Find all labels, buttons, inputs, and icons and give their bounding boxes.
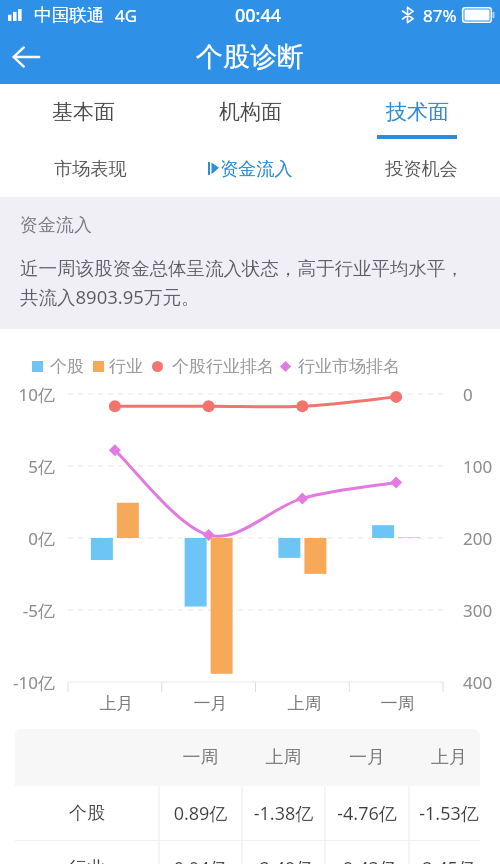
staticText: 5亿: [0, 455, 55, 478]
button[interactable]: 投资机会: [361, 145, 481, 197]
staticText: 市场表现: [54, 157, 127, 180]
button[interactable]: 机构面: [166, 84, 333, 145]
button[interactable]: Back: [0, 31, 52, 83]
staticText: 机构面: [219, 99, 282, 125]
staticText: -5亿: [0, 599, 55, 622]
staticText: 10亿: [0, 383, 55, 406]
staticText: 个股行业排名: [172, 356, 274, 377]
staticText: 一月: [164, 693, 257, 714]
staticText: 中国联通: [34, 4, 104, 26]
staticText: 00:44: [235, 3, 282, 28]
staticText: 200: [463, 527, 500, 550]
staticText: -1.53亿: [418, 801, 480, 826]
staticText: 投资机会: [385, 157, 458, 180]
staticText: 一周: [351, 693, 444, 714]
staticText: 技术面: [386, 99, 449, 125]
staticText: 行业: [15, 857, 159, 864]
button[interactable]: 技术面: [333, 84, 500, 145]
staticText: 行业市场排名: [298, 356, 400, 377]
staticText: -10亿: [0, 671, 55, 694]
staticText: 上周: [242, 746, 325, 769]
staticText: -2.49亿: [242, 856, 325, 864]
staticText: 0亿: [0, 527, 55, 550]
staticText: 行业: [109, 356, 143, 377]
staticText: 个股: [50, 356, 84, 377]
staticText: 上月: [70, 693, 163, 714]
staticText: 资金流入: [20, 214, 92, 237]
staticText: 基本面: [52, 99, 115, 125]
staticText: 上月: [418, 746, 480, 769]
staticText: 0.89亿: [159, 801, 242, 826]
button[interactable]: 市场表现: [30, 145, 150, 197]
staticText: -1.38亿: [242, 801, 325, 826]
staticText: 个股: [15, 802, 159, 825]
staticText: 资金流入: [220, 157, 293, 180]
staticText: 87%: [423, 4, 457, 27]
staticText: 2.45亿: [418, 856, 480, 864]
staticText: -4.76亿: [325, 801, 409, 826]
staticText: 100: [463, 455, 500, 478]
staticText: 一周: [159, 746, 242, 769]
staticText: 个股诊断: [196, 40, 304, 74]
staticText: 一月: [325, 746, 409, 769]
staticText: 4G: [115, 4, 138, 27]
staticText: 300: [463, 599, 500, 622]
button[interactable]: 基本面: [0, 84, 166, 145]
staticText: 0.04亿: [159, 856, 242, 864]
staticText: 上周: [258, 693, 351, 714]
staticText: 近一周该股资金总体呈流入状态，高于行业平均水平，共流入8903.95万元。: [20, 257, 482, 309]
staticText: -9.43亿: [325, 856, 409, 864]
button[interactable]: 资金流入: [190, 145, 310, 197]
staticText: 0: [463, 383, 500, 406]
staticText: 400: [463, 671, 500, 694]
